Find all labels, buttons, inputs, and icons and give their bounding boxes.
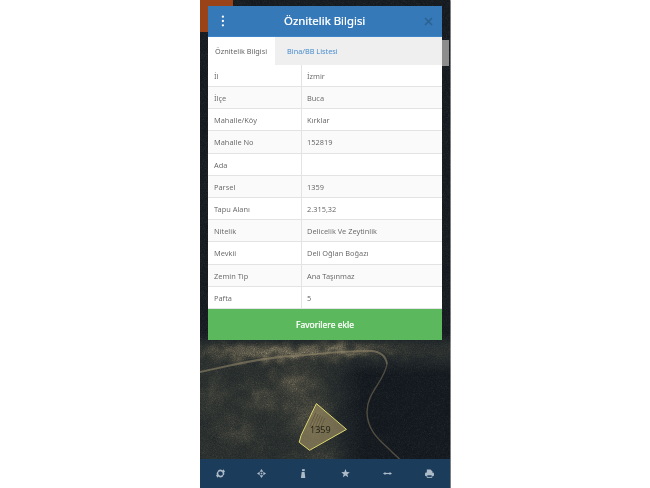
button[interactable]: İlçe	[208, 87, 442, 108]
staticText: Ada	[214, 160, 228, 170]
staticText: Nitelik	[214, 226, 237, 236]
staticText: Parsel	[214, 182, 236, 192]
button[interactable]: Mahalle No	[208, 131, 442, 153]
staticText: Delicelik Ve Zeytinlik	[307, 226, 378, 236]
button[interactable]: Mahalle/Köy	[208, 109, 442, 130]
button[interactable]: Bina/BB Listesi	[275, 36, 349, 65]
button[interactable]: Pan	[241, 459, 282, 488]
button[interactable]: More options	[208, 6, 238, 36]
button[interactable]: Favorilere ekle	[208, 309, 442, 340]
staticText: Favorilere ekle	[296, 319, 354, 331]
button[interactable]: İl	[208, 65, 442, 86]
button[interactable]: Print	[408, 459, 450, 488]
staticText: Öznitelik Bilgisi	[215, 46, 268, 56]
button[interactable]: Zemin Tip	[208, 265, 442, 286]
button[interactable]: Measure	[366, 459, 408, 488]
button[interactable]: Refresh	[200, 459, 241, 488]
staticText: Tapu Alanı	[214, 204, 250, 214]
staticText: Deli Oğlan Boğazı	[307, 248, 369, 258]
button[interactable]: Ada	[208, 154, 442, 175]
staticText: 5	[307, 293, 312, 303]
button[interactable]: Mevkii	[208, 242, 442, 264]
button[interactable]: Favorite	[324, 459, 366, 488]
staticText: Öznitelik Bilgisi	[284, 13, 366, 29]
button[interactable]: Nitelik	[208, 220, 442, 241]
button[interactable]: Tapu Alanı	[208, 198, 442, 219]
staticText: 152819	[307, 137, 333, 147]
staticText: Ana Taşınmaz	[307, 271, 355, 281]
staticText: 1359	[307, 182, 324, 192]
staticText: İlçe	[214, 93, 227, 103]
staticText: 2.315,32	[307, 204, 337, 214]
staticText: Kırklar	[307, 115, 330, 125]
staticText: Mevkii	[214, 248, 237, 258]
staticText: Zemin Tip	[214, 271, 249, 281]
staticText: Pafta	[214, 293, 232, 303]
staticText: İl	[214, 71, 219, 81]
staticText: Mahalle/Köy	[214, 115, 257, 125]
staticText: Mahalle No	[214, 137, 254, 147]
button[interactable]: Close	[414, 6, 442, 36]
button[interactable]: Info	[282, 459, 324, 488]
staticText: 1359	[310, 423, 331, 435]
staticText: İzmir	[307, 71, 325, 81]
button[interactable]: Parsel	[208, 176, 442, 197]
staticText: Buca	[307, 93, 325, 103]
staticText: Bina/BB Listesi	[287, 46, 338, 56]
button[interactable]: Öznitelik Bilgisi	[208, 36, 275, 65]
button[interactable]: Pafta	[208, 287, 442, 308]
